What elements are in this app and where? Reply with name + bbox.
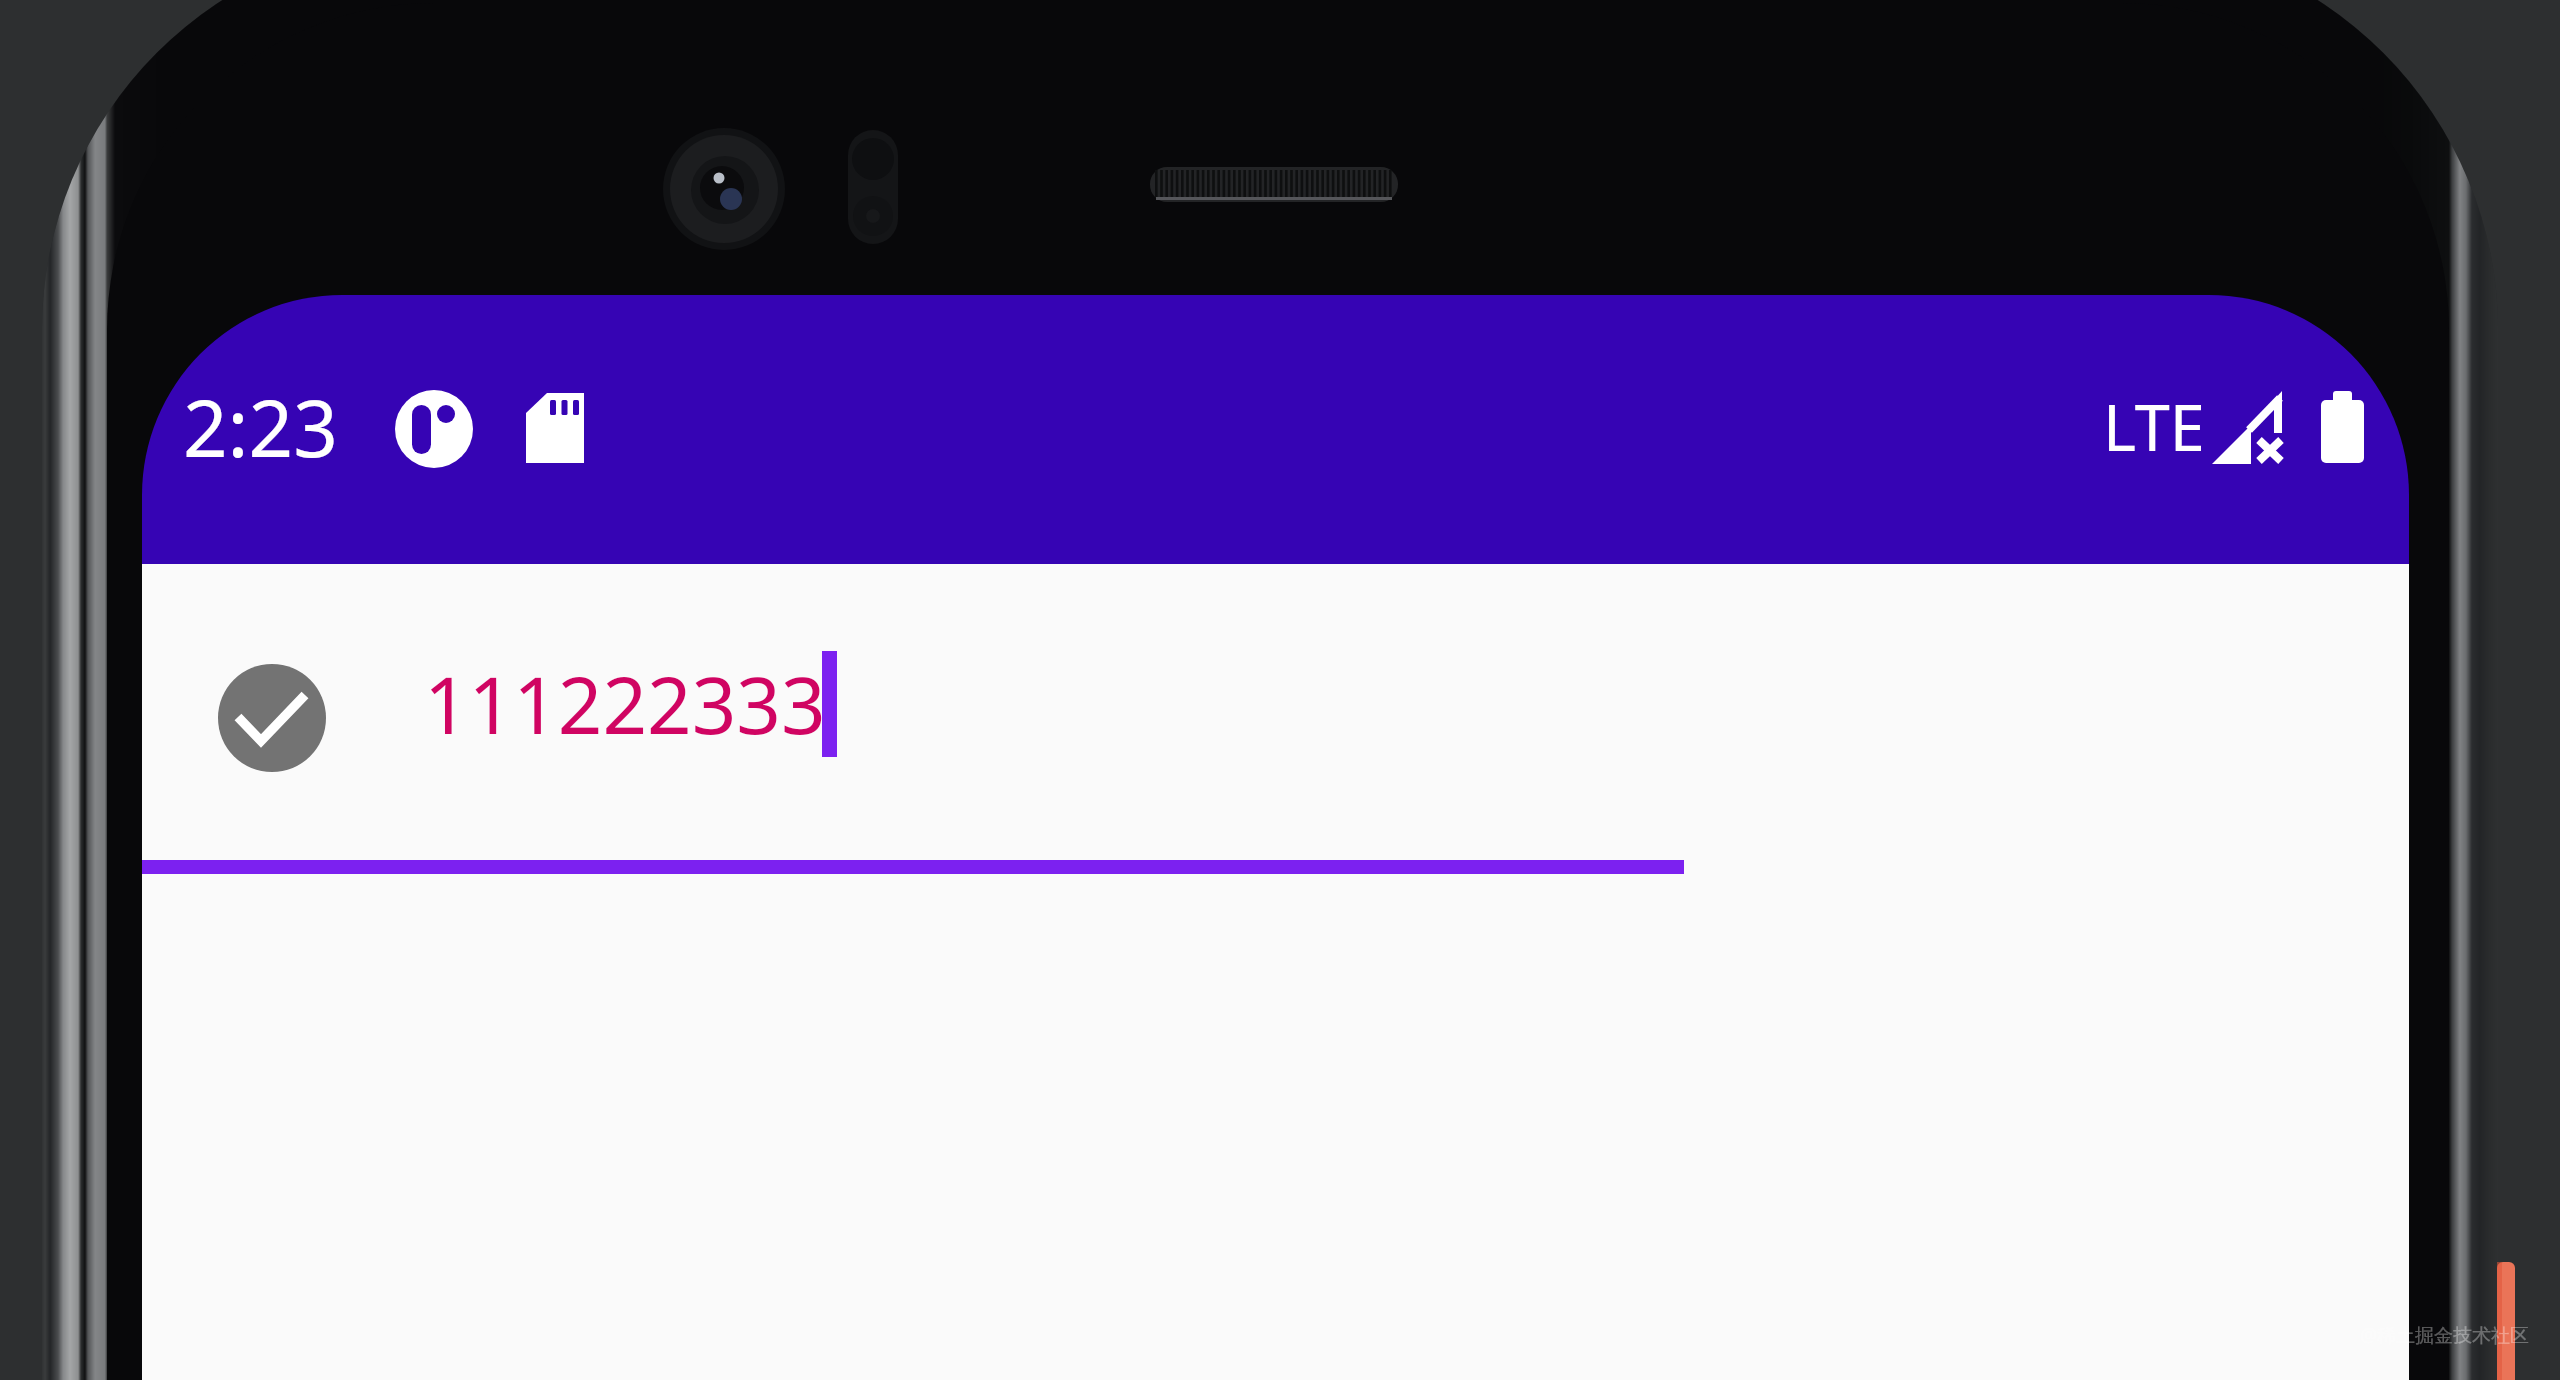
staticText: 2:23 bbox=[183, 374, 338, 480]
staticText: @稀土掘金技术社区 bbox=[2360, 1322, 2530, 1348]
staticText: LTE bbox=[2103, 384, 2205, 470]
staticText: 111222333 bbox=[424, 651, 826, 757]
button[interactable]: Verified bbox=[218, 664, 326, 772]
button[interactable]: Phone number text field bbox=[142, 618, 1684, 876]
